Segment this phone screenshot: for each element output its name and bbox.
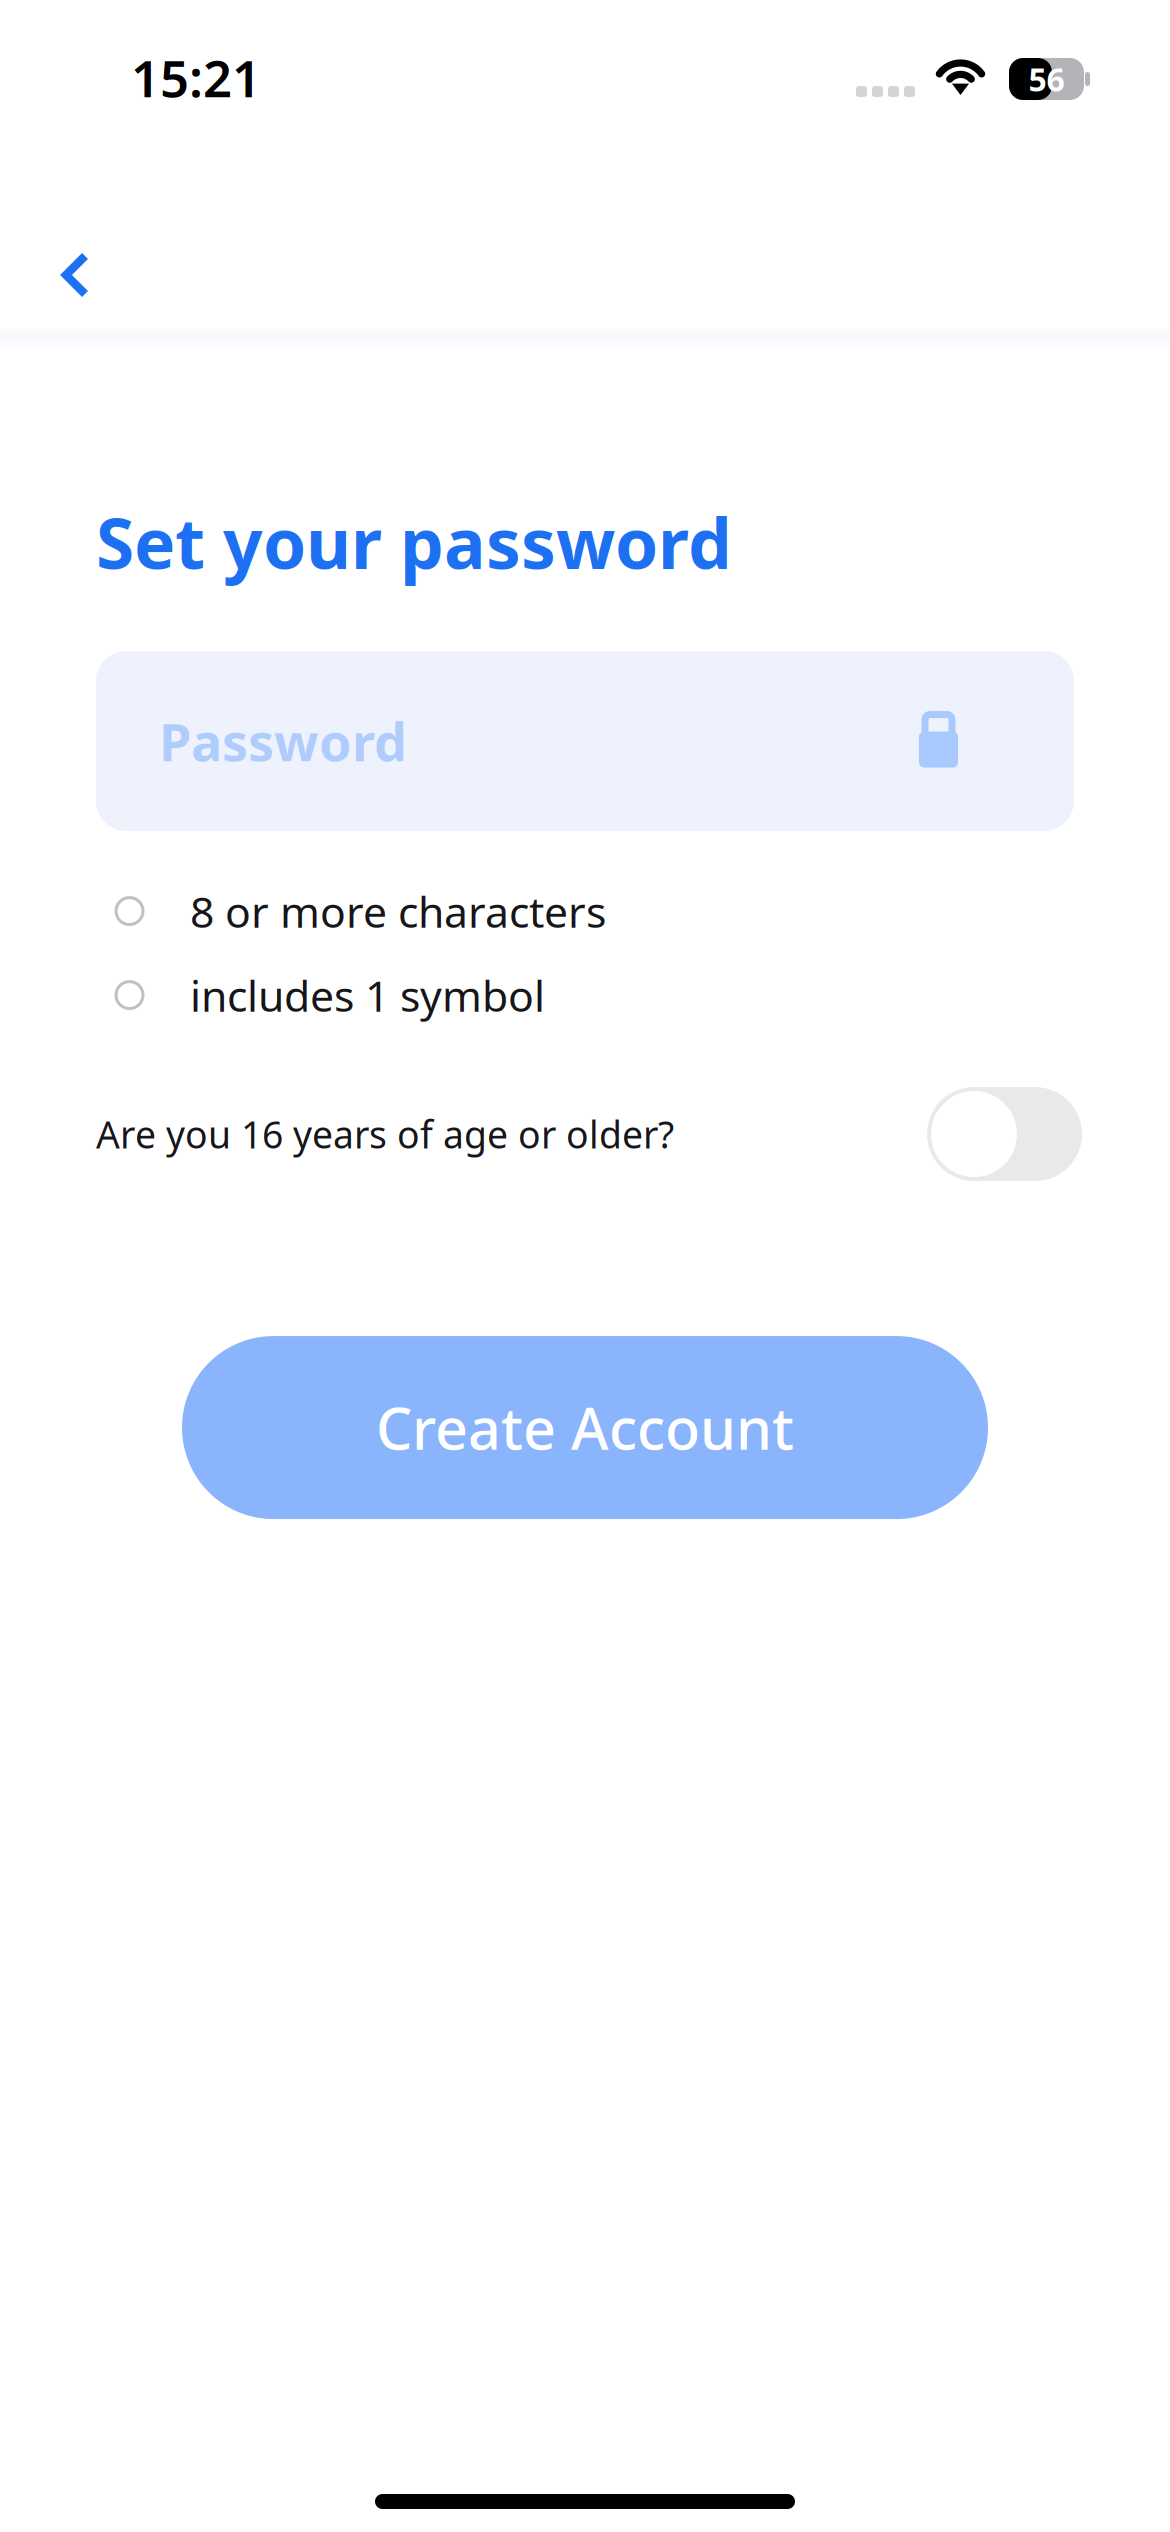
staticText: Password [159, 706, 407, 776]
button[interactable]: Password [96, 651, 1074, 831]
staticText: Are you 16 years of age or older? [96, 1109, 674, 1159]
button[interactable]: Are you 16 years of age or older? [927, 1087, 1082, 1181]
staticText: 56 [1028, 58, 1064, 100]
button[interactable]: Back [35, 222, 116, 328]
staticText: 15:21 [131, 44, 261, 111]
button[interactable]: Create Account [182, 1336, 988, 1519]
staticText: Create Account [376, 1389, 794, 1466]
staticText: Set your password [96, 496, 732, 588]
staticText: includes 1 symbol [190, 967, 545, 1023]
staticText: 8 or more characters [190, 883, 606, 939]
